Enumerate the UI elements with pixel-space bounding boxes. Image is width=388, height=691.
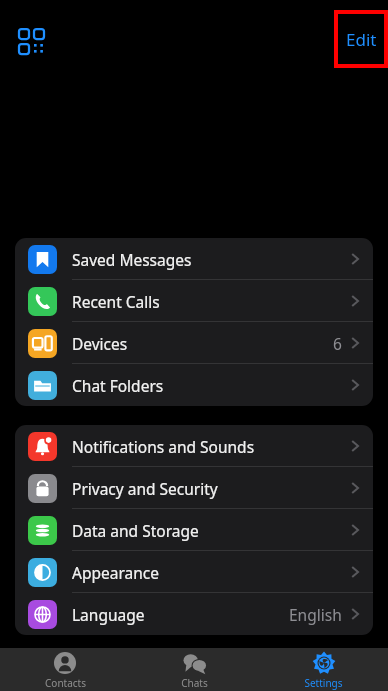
staticText: Contacts bbox=[45, 676, 86, 690]
button[interactable]: Saved Messages bbox=[15, 238, 373, 280]
button[interactable]: Chat Folders bbox=[15, 364, 373, 406]
staticText: Chat Folders bbox=[72, 375, 164, 396]
button[interactable]: Edit bbox=[336, 12, 386, 66]
button[interactable]: Contacts bbox=[0, 648, 130, 691]
button[interactable]: Chats bbox=[130, 648, 259, 691]
button[interactable]: Language bbox=[15, 593, 373, 635]
staticText: Data and Storage bbox=[72, 520, 199, 541]
button[interactable]: Privacy and Security bbox=[15, 467, 373, 509]
staticText: Language bbox=[72, 604, 145, 625]
staticText: Chats bbox=[181, 676, 208, 690]
button[interactable]: Devices bbox=[15, 322, 373, 364]
staticText: Saved Messages bbox=[72, 249, 192, 270]
staticText: English bbox=[289, 604, 342, 625]
staticText: 6 bbox=[333, 333, 342, 354]
staticText: Notifications and Sounds bbox=[72, 436, 255, 457]
staticText: Settings bbox=[304, 676, 343, 690]
button[interactable]: Recent Calls bbox=[15, 280, 373, 322]
button[interactable]: Notifications and Sounds bbox=[15, 425, 373, 467]
button[interactable]: Settings bbox=[259, 648, 388, 691]
staticText: Devices bbox=[72, 333, 128, 354]
staticText: Appearance bbox=[72, 562, 159, 583]
staticText: Edit bbox=[346, 28, 377, 51]
staticText: Recent Calls bbox=[72, 291, 160, 312]
button[interactable]: Scan QR code bbox=[14, 24, 48, 58]
button[interactable]: Appearance bbox=[15, 551, 373, 593]
staticText: Privacy and Security bbox=[72, 478, 218, 499]
button[interactable]: Data and Storage bbox=[15, 509, 373, 551]
